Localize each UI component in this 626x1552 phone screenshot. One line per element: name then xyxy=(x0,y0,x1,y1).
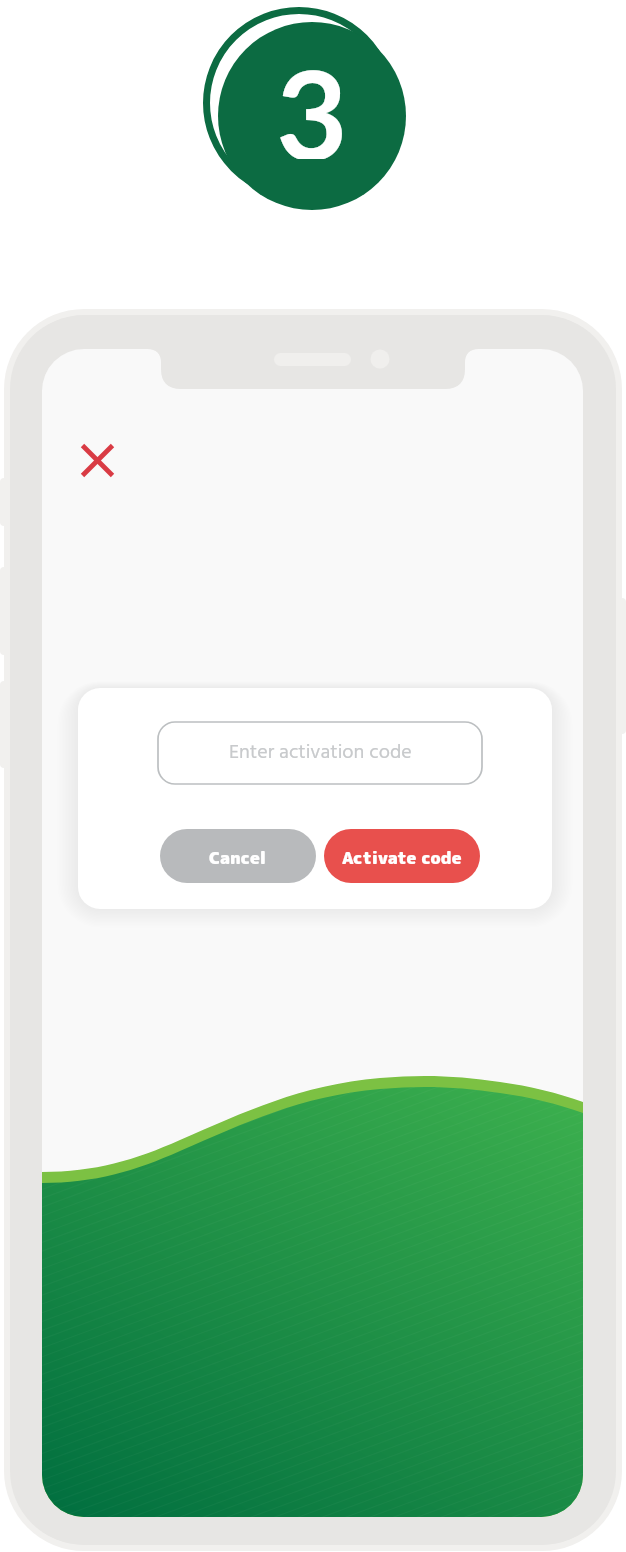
button[interactable]: Enter activation code xyxy=(158,722,482,784)
staticText: Enter activation code xyxy=(229,737,412,769)
staticText: 3 xyxy=(276,39,348,159)
button[interactable]: Close xyxy=(71,434,124,487)
staticText: Activate code xyxy=(342,846,462,870)
button[interactable]: Cancel xyxy=(160,831,316,885)
button[interactable]: Activate code xyxy=(324,831,480,885)
staticText: Cancel xyxy=(209,846,267,870)
